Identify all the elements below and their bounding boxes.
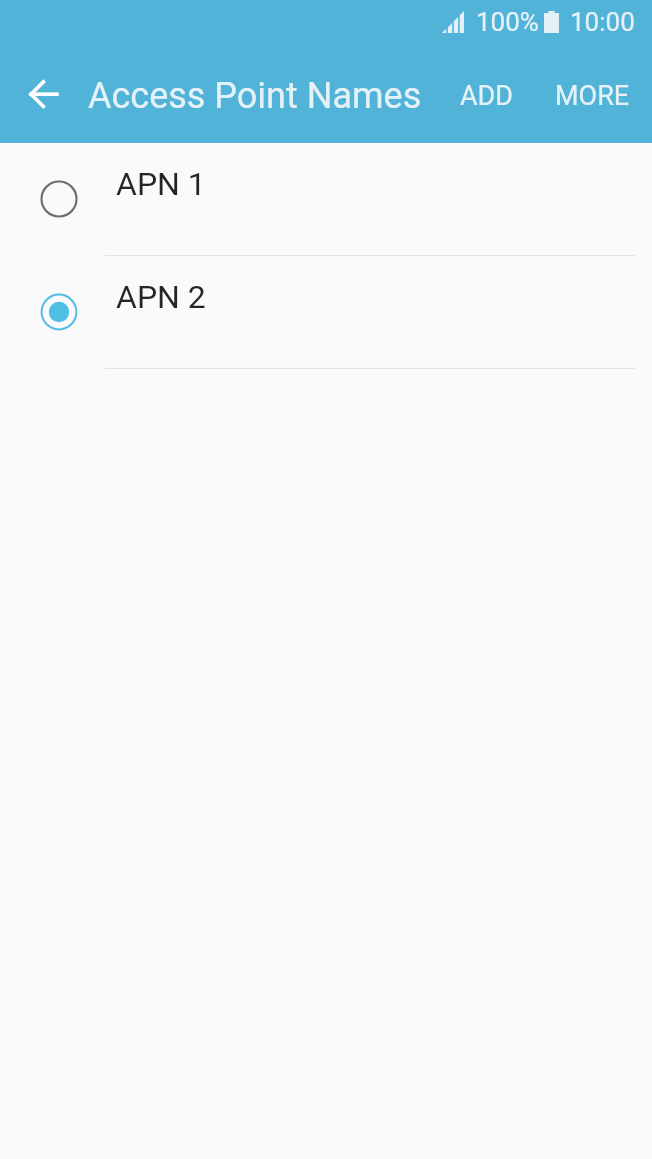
button[interactable]: Select APN 1 bbox=[0, 143, 652, 256]
staticText: ADD bbox=[460, 80, 514, 112]
button[interactable]: MORE bbox=[539, 68, 646, 124]
button[interactable]: Navigate up bbox=[10, 62, 78, 130]
staticText: APN 2 bbox=[116, 278, 206, 316]
button[interactable]: ADD bbox=[444, 68, 530, 124]
staticText: 10:00 bbox=[570, 7, 635, 37]
button[interactable]: APN 2 selected bbox=[41, 294, 77, 330]
staticText: 100% bbox=[476, 7, 539, 37]
button[interactable]: APN 2 selected bbox=[0, 256, 652, 369]
staticText: APN 1 bbox=[116, 165, 206, 203]
button[interactable]: Select APN 1 bbox=[41, 181, 77, 217]
staticText: MORE bbox=[555, 80, 630, 112]
staticText: Access Point Names bbox=[88, 75, 422, 117]
